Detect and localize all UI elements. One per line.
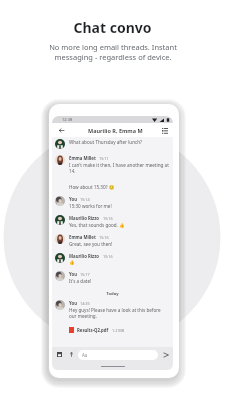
staticText: Great, see you then! [69,241,113,247]
staticText: Hey guys! Please have a look at this bef… [69,307,161,319]
button[interactable]: You [52,270,173,289]
button[interactable]: Maurilio Rizzo [52,252,173,270]
button[interactable]: Emma Millet [52,154,173,179]
staticText: 15:16 [103,216,113,221]
staticText: Chat convo [73,18,152,37]
staticText: Maurilio Rizzo [69,253,100,259]
staticText: It's a date! [69,278,92,284]
button[interactable]: Conversation details [160,126,169,135]
staticText: Maurilio R, Emma M [88,127,143,134]
button[interactable]: Attach [67,350,76,359]
button[interactable]: Back [56,125,67,136]
staticText: 15:30 works for me! [69,203,112,209]
staticText: No more long email threads. Instant mess… [49,42,177,62]
staticText: 15:17 [80,272,90,277]
button[interactable]: Aa [78,350,158,360]
staticText: 1.2 MB [112,328,125,333]
staticText: Results-Q2.pdf [77,327,109,333]
button[interactable]: You [52,299,173,324]
staticText: 15:11 [99,156,109,161]
button[interactable]: How about 15.30? 🙂 [52,179,173,195]
staticText: 14:35 [80,301,90,306]
staticText: Today [52,291,173,297]
staticText: Aa [82,352,88,358]
staticText: I can't make it then, I have another mee… [69,162,169,174]
staticText: How about 15.30? 🙂 [69,184,115,190]
staticText: You [69,271,77,277]
staticText: 12:38 [62,117,73,122]
button[interactable]: You [52,195,173,214]
staticText: Maurilio Rizzo [69,215,100,221]
staticText: 15:16 [99,235,109,240]
button[interactable]: Results-Q2.pdf [69,327,125,333]
button[interactable]: Emma Millet [52,233,173,252]
button[interactable]: Maurilio Rizzo [52,214,173,233]
staticText: Yes, that sounds good. 👍 [69,222,125,228]
button[interactable]: Send [161,350,170,359]
button[interactable]: What about Thursday after lunch? [52,138,173,154]
staticText: 👍 [69,260,75,265]
staticText: Emma Millet [69,155,96,161]
staticText: What about Thursday after lunch? [69,139,143,145]
button[interactable]: Gallery [55,350,64,359]
staticText: 15:14 [80,197,90,202]
staticText: 15:16 [103,254,113,259]
staticText: You [69,300,77,306]
staticText: You [69,196,77,202]
staticText: Emma Millet [69,234,96,240]
